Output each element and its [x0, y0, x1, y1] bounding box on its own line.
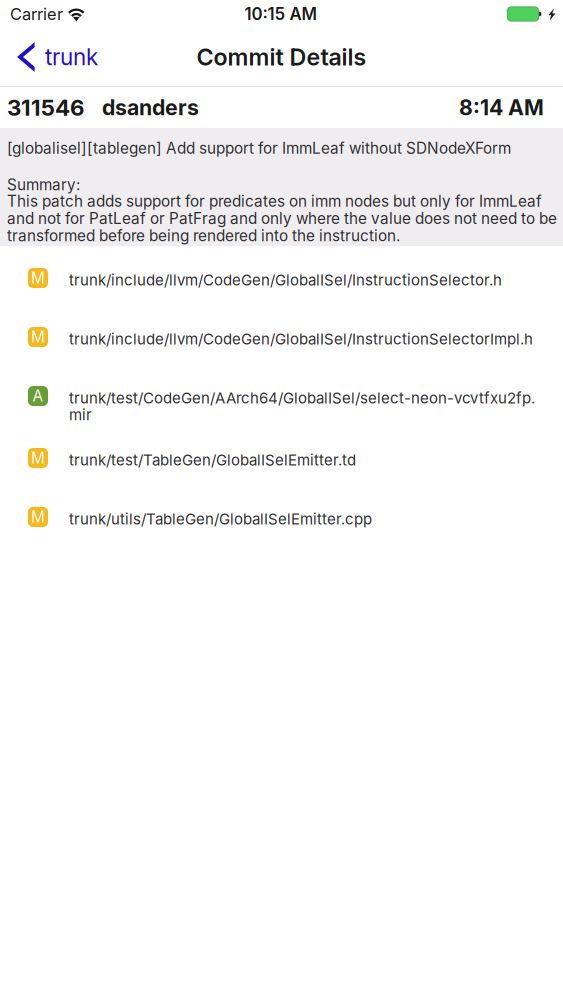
staticText: Summary:: [7, 175, 80, 194]
button[interactable]: A: [0, 368, 563, 430]
button[interactable]: trunk: [0, 34, 108, 80]
staticText: trunk/test/CodeGen/AArch64/GlobalISel/se…: [69, 389, 535, 407]
staticText: M: [31, 328, 45, 346]
button[interactable]: M: [0, 430, 563, 489]
staticText: 311546: [7, 94, 84, 121]
staticText: [globalisel][tablegen] Add support for I…: [7, 139, 511, 157]
staticText: trunk/test/TableGen/GlobalISelEmitter.td: [69, 451, 356, 469]
staticText: trunk/include/llvm/CodeGen/GlobalISel/In…: [69, 271, 502, 289]
staticText: Carrier: [10, 4, 63, 24]
staticText: M: [31, 269, 45, 287]
button[interactable]: M: [0, 489, 563, 548]
staticText: M: [31, 508, 45, 526]
staticText: trunk/utils/TableGen/GlobalISelEmitter.c…: [69, 510, 372, 528]
button[interactable]: M: [0, 309, 563, 368]
staticText: This patch adds support for predicates o…: [7, 192, 557, 245]
button[interactable]: M: [0, 250, 563, 309]
staticText: A: [32, 387, 43, 405]
staticText: trunk: [45, 43, 98, 71]
staticText: dsanders: [102, 95, 199, 120]
staticText: 8:14 AM: [459, 95, 544, 120]
staticText: 10:15 AM: [244, 4, 316, 24]
staticText: trunk/include/llvm/CodeGen/GlobalISel/In…: [69, 330, 533, 348]
staticText: Commit Details: [196, 43, 366, 71]
staticText: mir: [69, 406, 92, 424]
staticText: M: [31, 449, 45, 467]
